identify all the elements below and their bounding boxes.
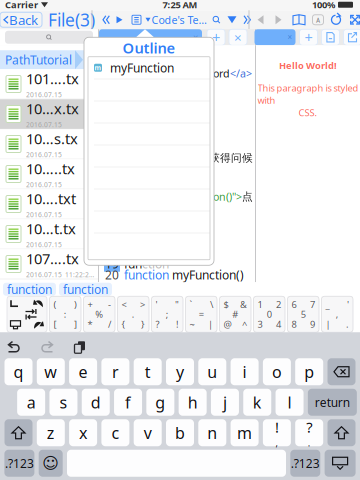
- staticText: .: [132, 308, 135, 320]
- button[interactable]: +: [83, 296, 115, 332]
- button[interactable]: Paste: [73, 341, 86, 354]
- button[interactable]: Outline: [131, 15, 141, 25]
- button[interactable]: s: [49, 389, 77, 416]
- button[interactable]: ': [151, 296, 183, 332]
- button[interactable]: u: [198, 358, 226, 385]
- button[interactable]: Current file tab: [99, 29, 202, 45]
- button[interactable]: 10….txt: [0, 189, 98, 219]
- button[interactable]: Redo: [40, 341, 54, 353]
- button[interactable]: Share: [343, 29, 360, 45]
- staticText: 19: [105, 256, 119, 272]
- button[interactable]: 101….tx: [0, 69, 98, 99]
- button[interactable]: Search: [212, 16, 220, 24]
- button[interactable]: More: [227, 16, 236, 23]
- staticText: i: [243, 361, 247, 382]
- button[interactable]: return: [308, 389, 357, 416]
- button[interactable]: b: [166, 419, 194, 446]
- button[interactable]: ?: [295, 419, 323, 446]
- button[interactable]: w: [37, 358, 65, 385]
- staticText: ,: [336, 308, 339, 320]
- button[interactable]: ×: [229, 29, 247, 45]
- button[interactable]: 10…x.tx: [0, 99, 98, 129]
- button[interactable]: q: [4, 358, 32, 385]
- button[interactable]: f: [114, 389, 142, 416]
- button[interactable]: 6: [287, 296, 319, 332]
- staticText: w: [44, 361, 57, 382]
- button[interactable]: t: [134, 358, 162, 385]
- button[interactable]: ☺: [39, 450, 63, 477]
- button[interactable]: v: [134, 419, 162, 446]
- button[interactable]: .?123: [4, 450, 34, 477]
- button[interactable]: !: [263, 419, 291, 446]
- button[interactable]: Indent keys: [7, 296, 47, 332]
- button[interactable]: Full screen: [349, 14, 360, 25]
- button[interactable]: o: [263, 358, 291, 385]
- staticText: 10…t.tx: [26, 219, 76, 238]
- button[interactable]: Preview tab: [254, 29, 295, 45]
- button[interactable]: Run: [116, 16, 122, 23]
- button[interactable]: p: [295, 358, 323, 385]
- button[interactable]: m: [231, 419, 259, 446]
- staticText: Carrier: [5, 0, 38, 11]
- staticText: h: [188, 392, 198, 413]
- staticText: #: [232, 308, 238, 320]
- button[interactable]: r: [101, 358, 129, 385]
- button[interactable]: `: [185, 296, 217, 332]
- button[interactable]: Next: [243, 16, 250, 24]
- button[interactable]: Reload: [330, 14, 341, 25]
- button[interactable]: a: [17, 389, 45, 416]
- button[interactable]: _: [321, 296, 353, 332]
- staticText: CSS.: [298, 106, 317, 119]
- staticText: 6: [291, 298, 296, 311]
- button[interactable]: 10…s.tx: [0, 129, 98, 159]
- staticText: 100%: [312, 0, 335, 11]
- button[interactable]: e: [69, 358, 97, 385]
- button[interactable]: <: [117, 296, 149, 332]
- button[interactable]: i: [231, 358, 259, 385]
- button[interactable]: .?123: [290, 450, 320, 477]
- button[interactable]: d: [82, 389, 110, 416]
- button[interactable]: function: [59, 283, 112, 296]
- button[interactable]: x: [69, 419, 97, 446]
- button[interactable]: $: [219, 296, 251, 332]
- button[interactable]: Export PDF: [321, 29, 339, 45]
- staticText: 2016.07.15: [26, 120, 62, 129]
- button[interactable]: function: [3, 283, 56, 296]
- button[interactable]: (: [49, 296, 81, 332]
- button[interactable]: Bookmarks: [292, 14, 305, 25]
- staticText: l: [288, 392, 292, 413]
- button[interactable]: l: [276, 389, 304, 416]
- staticText: ;: [166, 308, 169, 320]
- staticText: ×: [193, 31, 198, 43]
- button[interactable]: 107….tx: [0, 249, 98, 279]
- button[interactable]: Text size: [312, 15, 323, 25]
- staticText: 10…..tx: [26, 159, 75, 178]
- button[interactable]: Back: [0, 12, 42, 27]
- button[interactable]: Undo: [7, 341, 21, 353]
- button[interactable]: z: [37, 419, 65, 446]
- button[interactable]: h: [179, 389, 207, 416]
- button[interactable]: Shift: [327, 419, 355, 446]
- button[interactable]: Forward: [275, 15, 281, 24]
- button[interactable]: 1: [253, 296, 285, 332]
- button[interactable]: n: [198, 419, 226, 446]
- button[interactable]: Code's Te…: [145, 13, 206, 27]
- button[interactable]: Back: [257, 15, 263, 24]
- button[interactable]: Hide keyboard: [325, 450, 356, 477]
- staticText: function: [124, 267, 172, 283]
- button[interactable]: j: [211, 389, 239, 416]
- button[interactable]: Delete: [327, 358, 355, 385]
- button[interactable]: Previous: [102, 16, 109, 24]
- button[interactable]: 10…t.tx: [0, 219, 98, 249]
- button[interactable]: +: [299, 29, 317, 45]
- button[interactable]: 10…..tx: [0, 159, 98, 189]
- button[interactable]: g: [146, 389, 174, 416]
- staticText: myFunction: [110, 60, 174, 76]
- button[interactable]: +: [207, 29, 225, 45]
- button[interactable]: c: [101, 419, 129, 446]
- button[interactable]: Shift: [4, 419, 32, 446]
- button[interactable]: m: [88, 57, 210, 79]
- button[interactable]: k: [243, 389, 271, 416]
- button[interactable]: y: [166, 358, 194, 385]
